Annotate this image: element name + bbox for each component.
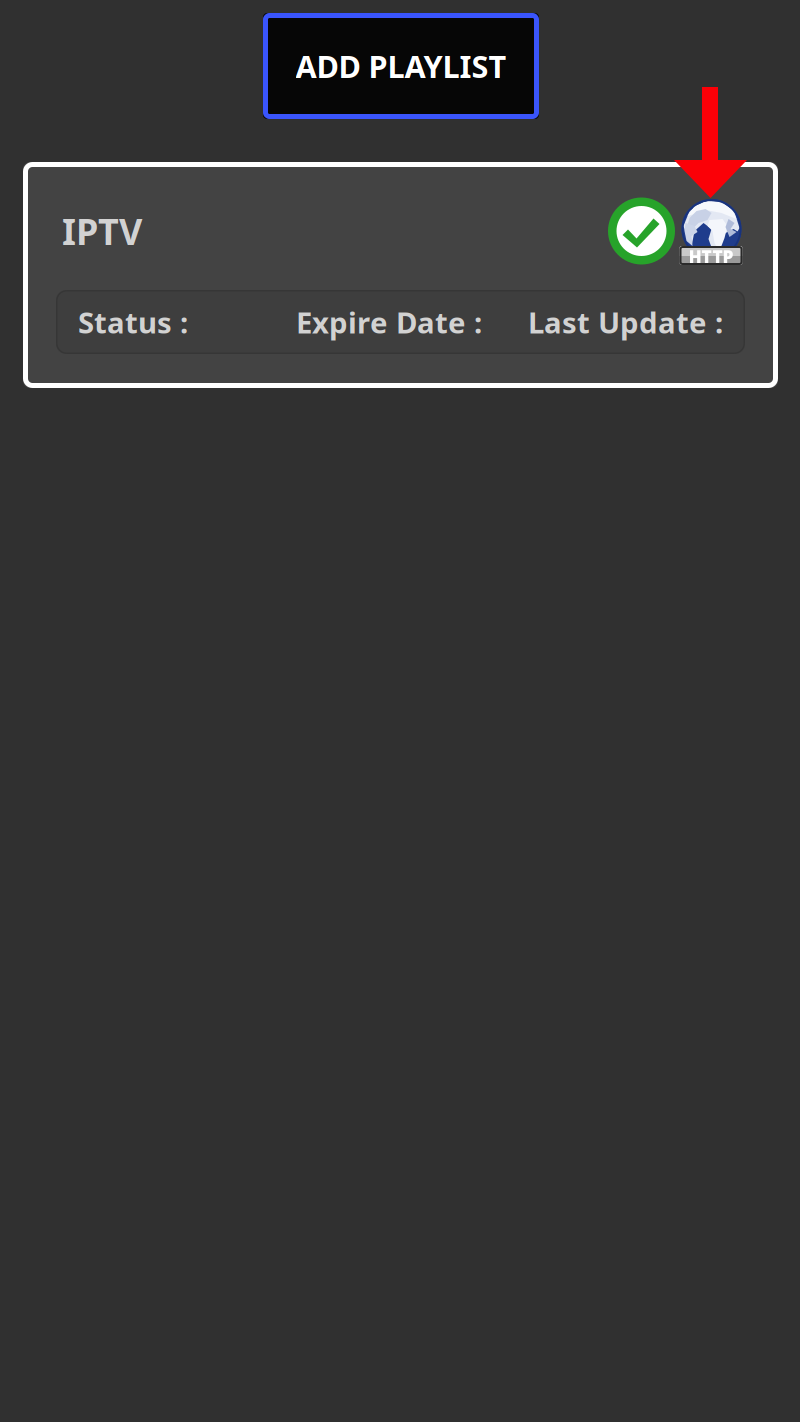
button[interactable]: IPTV [23,162,778,388]
staticText: Last Update : [528,302,723,341]
button[interactable]: HTTP source [678,195,743,262]
button[interactable]: ADD PLAYLIST [263,13,539,119]
staticText: Status : [78,302,188,341]
staticText: ADD PLAYLIST [295,46,506,86]
staticText: IPTV [62,207,142,255]
staticText: HTTP [688,245,733,268]
button[interactable]: Playlist active [608,197,675,264]
staticText: Expire Date : [296,302,482,341]
